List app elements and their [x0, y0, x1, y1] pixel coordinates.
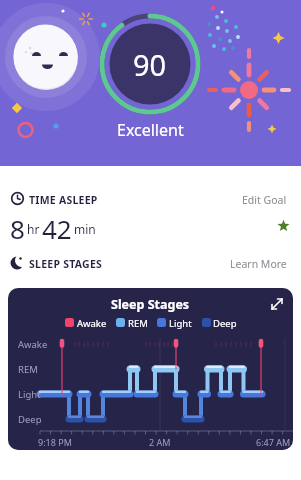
button[interactable]	[266, 292, 290, 316]
staticText: Light	[18, 388, 41, 401]
staticText: Edit Goal	[242, 193, 287, 207]
staticText: 2 AM	[149, 436, 171, 448]
staticText: 42	[42, 211, 72, 246]
staticText: Excellent	[117, 119, 184, 141]
button[interactable]: Learn More	[230, 257, 287, 271]
staticText: 9:18 PM	[38, 436, 72, 448]
staticText: REM	[18, 363, 38, 376]
button[interactable]: Edit Goal	[242, 193, 287, 207]
staticText: Light	[169, 317, 192, 330]
staticText: Awake	[77, 317, 107, 330]
staticText: SLEEP STAGES	[29, 257, 103, 271]
staticText: 6:47 AM	[256, 436, 291, 448]
staticText: 90	[133, 45, 167, 84]
staticText: Deep	[18, 413, 42, 426]
staticText: Deep	[213, 317, 237, 330]
staticText: hr	[27, 221, 40, 237]
button[interactable]: Sleep Stages	[8, 288, 293, 450]
staticText: Sleep Stages	[111, 296, 190, 313]
staticText: 8	[10, 211, 25, 246]
staticText: REM	[128, 317, 148, 330]
staticText: Awake	[18, 338, 48, 351]
staticText: min	[74, 221, 96, 237]
staticText: Learn More	[230, 257, 287, 271]
staticText: TIME ASLEEP	[29, 193, 98, 207]
